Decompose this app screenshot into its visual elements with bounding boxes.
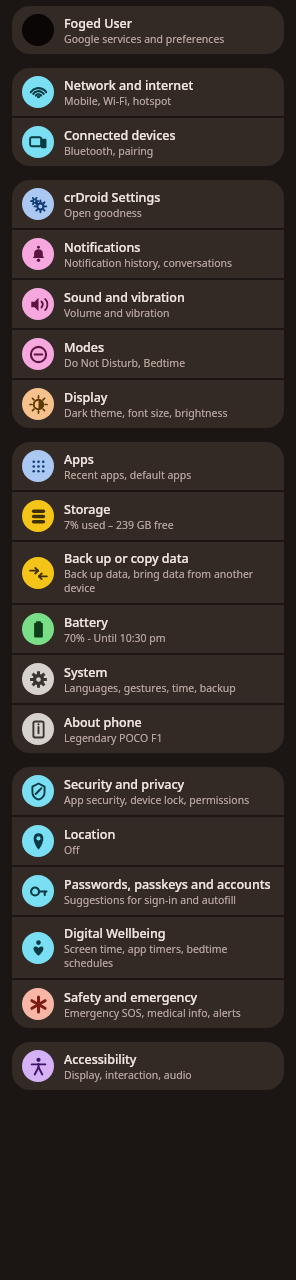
- staticText: Apps: [64, 451, 94, 468]
- button[interactable]: Safety and emergency: [12, 980, 284, 1028]
- staticText: Connected devices: [64, 127, 176, 144]
- staticText: 7% used – 239 GB free: [64, 518, 174, 532]
- button[interactable]: Passwords, passkeys and accounts: [12, 867, 284, 915]
- staticText: Digital Wellbeing: [64, 925, 166, 942]
- staticText: Notification history, conversations: [64, 256, 233, 270]
- button[interactable]: Network and internet: [12, 68, 284, 116]
- button[interactable]: Security and privacy: [12, 767, 284, 815]
- staticText: crDroid Settings: [64, 189, 161, 206]
- button[interactable]: Notifications: [12, 230, 284, 278]
- staticText: Mobile, Wi-Fi, hotspot: [64, 94, 172, 108]
- staticText: Location: [64, 826, 116, 843]
- staticText: Emergency SOS, medical info, alerts: [64, 1006, 241, 1020]
- staticText: Network and internet: [64, 77, 194, 94]
- staticText: Battery: [64, 614, 108, 631]
- button[interactable]: Location: [12, 817, 284, 865]
- button[interactable]: Back up or copy data: [12, 542, 284, 603]
- staticText: Display: [64, 389, 108, 406]
- staticText: Bluetooth, pairing: [64, 144, 154, 158]
- staticText: Do Not Disturb, Bedtime: [64, 356, 186, 370]
- staticText: Suggestions for sign-in and autofill: [64, 893, 237, 907]
- staticText: Notifications: [64, 239, 141, 256]
- staticText: Passwords, passkeys and accounts: [64, 876, 271, 893]
- button[interactable]: Accessibility: [12, 1042, 284, 1090]
- staticText: Dark theme, font size, brightness: [64, 406, 228, 420]
- staticText: Legendary POCO F1: [64, 731, 163, 745]
- staticText: Security and privacy: [64, 776, 185, 793]
- staticText: App security, device lock, permissions: [64, 793, 250, 807]
- button[interactable]: Battery: [12, 605, 284, 653]
- button[interactable]: Display: [12, 380, 284, 428]
- button[interactable]: Foged User: [12, 6, 284, 54]
- button[interactable]: Apps: [12, 442, 284, 490]
- staticText: Open goodness: [64, 206, 142, 220]
- staticText: Google services and preferences: [64, 32, 225, 46]
- button[interactable]: System: [12, 655, 284, 703]
- staticText: System: [64, 664, 108, 681]
- button[interactable]: Digital Wellbeing: [12, 917, 284, 978]
- button[interactable]: Storage: [12, 492, 284, 540]
- staticText: Back up or copy data: [64, 550, 189, 567]
- staticText: Recent apps, default apps: [64, 468, 192, 482]
- button[interactable]: Modes: [12, 330, 284, 378]
- staticText: Off: [64, 843, 80, 857]
- staticText: Volume and vibration: [64, 306, 170, 320]
- staticText: Storage: [64, 501, 111, 518]
- staticText: About phone: [64, 714, 142, 731]
- staticText: Safety and emergency: [64, 989, 198, 1006]
- button[interactable]: crDroid Settings: [12, 180, 284, 228]
- staticText: Display, interaction, audio: [64, 1068, 192, 1082]
- button[interactable]: Connected devices: [12, 118, 284, 166]
- staticText: Screen time, app timers, bedtime schedul…: [64, 942, 272, 970]
- staticText: 70% - Until 10:30 pm: [64, 631, 166, 645]
- staticText: Foged User: [64, 15, 132, 32]
- staticText: Languages, gestures, time, backup: [64, 681, 236, 695]
- staticText: Sound and vibration: [64, 289, 185, 306]
- staticText: Back up data, bring data from another de…: [64, 567, 272, 595]
- button[interactable]: About phone: [12, 705, 284, 753]
- button[interactable]: Sound and vibration: [12, 280, 284, 328]
- staticText: Modes: [64, 339, 105, 356]
- staticText: Accessibility: [64, 1051, 137, 1068]
